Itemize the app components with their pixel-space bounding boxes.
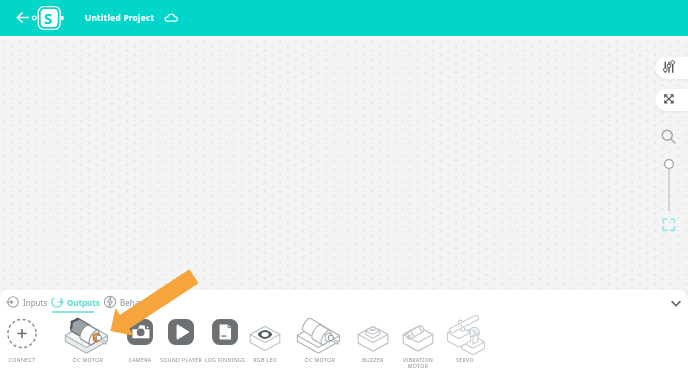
button[interactable]: SERVO xyxy=(439,314,491,368)
button[interactable]: Project settings xyxy=(32,4,64,32)
button[interactable]: Outputs xyxy=(50,293,100,311)
staticText: Untitled Project xyxy=(85,12,155,23)
button[interactable]: Adjust settings xyxy=(655,57,688,79)
button[interactable]: VIBRATION MOTOR xyxy=(392,314,444,368)
button[interactable]: Back xyxy=(13,8,32,27)
staticText: Behaviors xyxy=(120,297,158,308)
staticText: Outputs xyxy=(67,297,100,308)
staticText: CAMERA xyxy=(114,356,166,363)
staticText: SERVO xyxy=(439,356,491,363)
button[interactable]: LOG FINDINGS xyxy=(199,314,251,368)
staticText: CONNECT xyxy=(0,356,48,363)
button[interactable]: CAMERA xyxy=(114,314,166,368)
staticText: S xyxy=(44,8,53,28)
staticText: DC MOTOR xyxy=(294,356,346,363)
button[interactable]: SOUND PLAYER xyxy=(155,314,207,368)
button[interactable]: RGB LED xyxy=(239,314,291,368)
button[interactable]: Collapse panel xyxy=(666,294,686,314)
button[interactable]: Expand to fit xyxy=(655,89,688,111)
button[interactable]: DC MOTOR xyxy=(294,314,346,368)
button[interactable]: Recenter view xyxy=(662,218,676,232)
staticText: DC MOTOR xyxy=(62,356,114,363)
button[interactable]: Inputs xyxy=(6,293,48,311)
button[interactable]: Behaviors xyxy=(103,293,158,311)
button[interactable]: Zoom level xyxy=(661,129,677,145)
staticText: Inputs xyxy=(23,297,48,308)
staticText: VIBRATION MOTOR xyxy=(392,356,444,368)
staticText: SOUND PLAYER xyxy=(155,356,207,363)
staticText: RGB LED xyxy=(239,356,291,363)
button[interactable]: Cloud sync xyxy=(164,11,179,24)
button[interactable]: CONNECT xyxy=(0,314,48,368)
button[interactable]: BUZZER xyxy=(347,314,399,368)
button[interactable]: DC MOTOR xyxy=(62,314,114,368)
staticText: LOG FINDINGS xyxy=(199,356,251,363)
staticText: BUZZER xyxy=(347,356,399,363)
